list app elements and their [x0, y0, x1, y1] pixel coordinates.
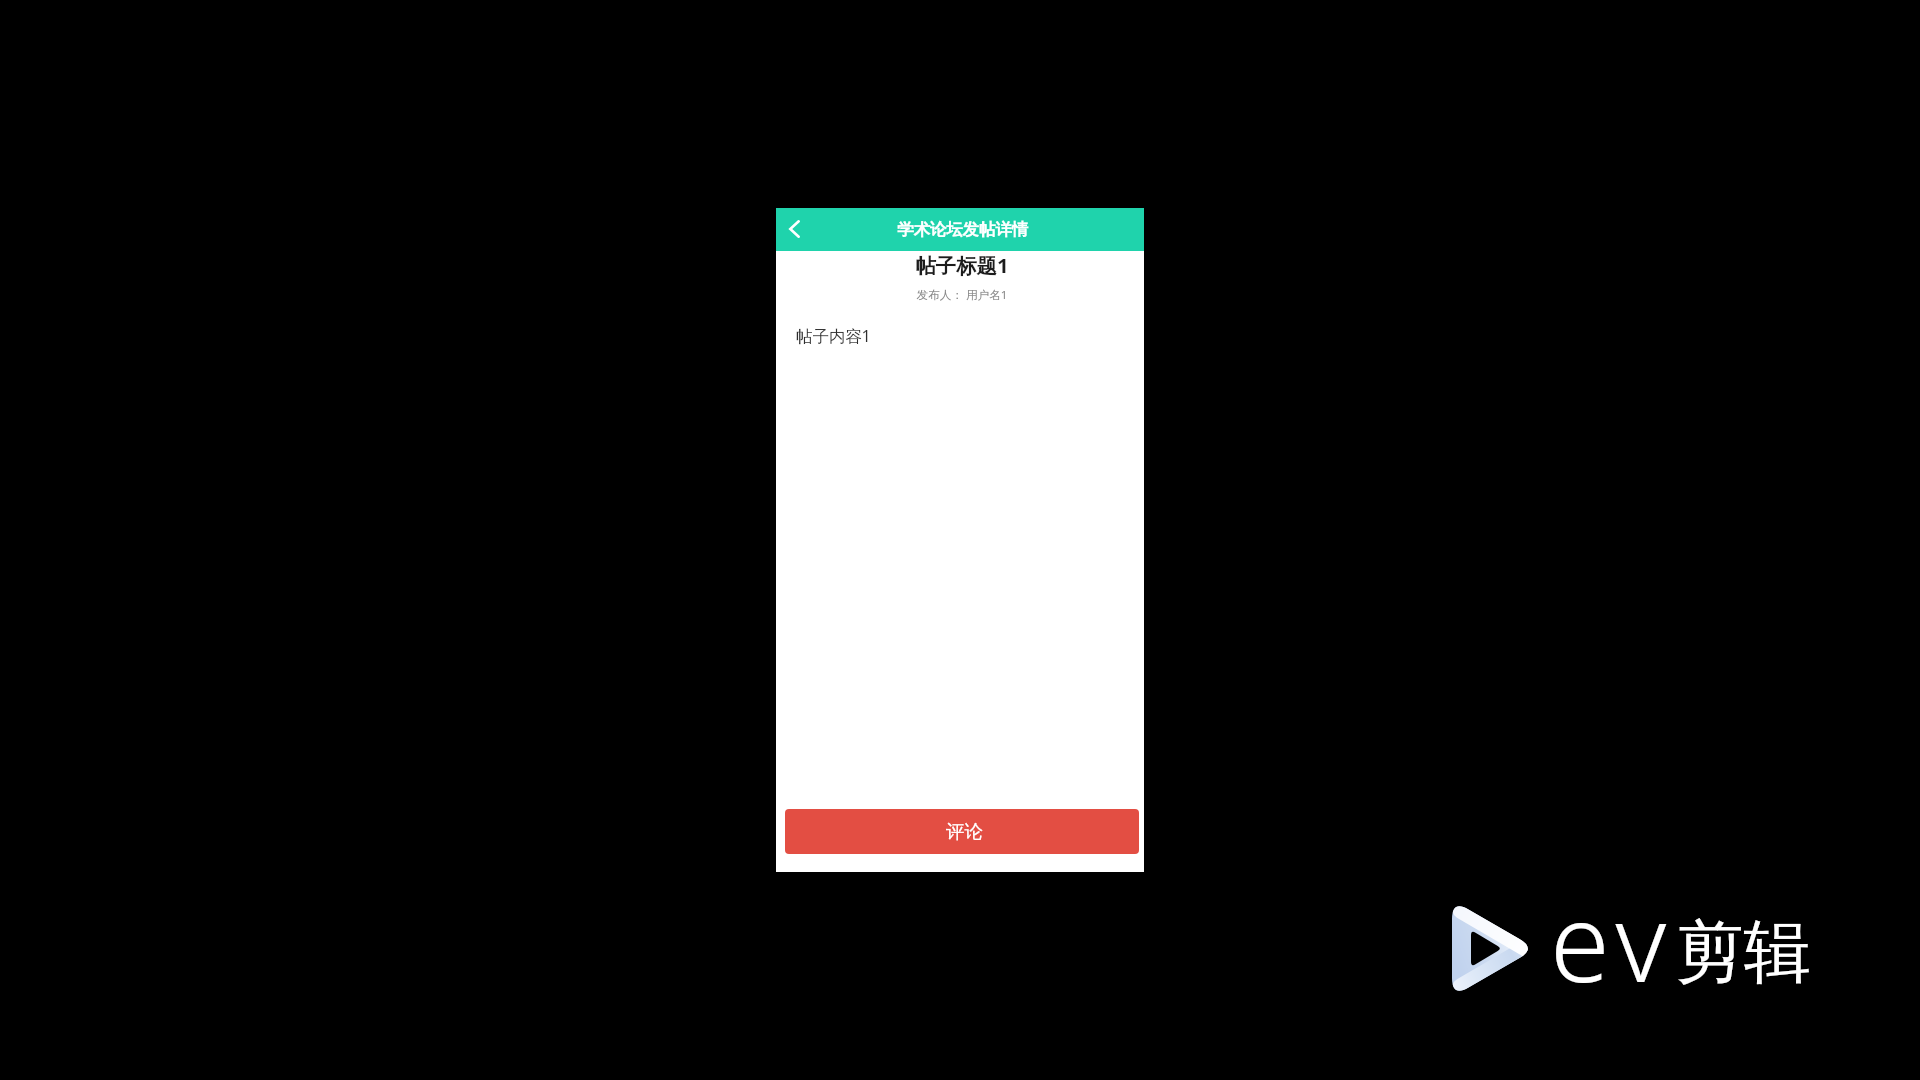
staticText: 帖子内容1 [796, 324, 871, 346]
staticText: 学术论坛发帖详情 [897, 219, 1029, 240]
staticText: 剪辑 [1676, 910, 1811, 995]
staticText: ev [1550, 867, 1675, 1014]
button[interactable]: Back [776, 208, 812, 251]
staticText: 评论 [946, 820, 983, 843]
staticText: 发布人： 用户名1 [778, 287, 1146, 303]
button[interactable]: 评论 [785, 809, 1139, 854]
staticText: 帖子标题1 [778, 251, 1146, 279]
